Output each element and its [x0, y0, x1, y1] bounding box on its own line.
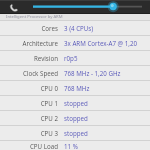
- button[interactable]: CPU Load: [0, 140, 150, 150]
- staticText: CPU Load: [29, 142, 58, 150]
- staticText: 768 MHz: [64, 84, 90, 92]
- staticText: Clock Speed: [22, 69, 58, 77]
- button[interactable]: CPU 0: [0, 80, 150, 95]
- staticText: 3x ARM Cortex-A7 @ 1,20 GHz: [64, 39, 150, 47]
- staticText: stopped: [64, 129, 88, 137]
- staticText: Architecture: [22, 39, 58, 47]
- staticText: Intelligent Processor by ARM: [6, 14, 63, 20]
- button[interactable]: CPU 2: [0, 110, 150, 125]
- staticText: stopped: [64, 114, 88, 122]
- staticText: r0p5: [64, 54, 78, 62]
- staticText: 768 MHz - 1,20 GHz: [64, 69, 121, 77]
- staticText: 3 (4 CPUs): [64, 24, 94, 32]
- button[interactable]: Volume slider: [30, 0, 148, 14]
- staticText: CPU 3: [40, 129, 58, 137]
- button[interactable]: CPU 1: [0, 95, 150, 110]
- button[interactable]: Architecture: [0, 35, 150, 50]
- staticText: CPU 0: [40, 84, 58, 92]
- staticText: Cores: [41, 24, 58, 32]
- button[interactable]: Call volume: [7, 1, 20, 14]
- button[interactable]: Revision: [0, 50, 150, 65]
- staticText: stopped: [64, 99, 88, 107]
- button[interactable]: CPU 3: [0, 125, 150, 140]
- staticText: CPU 2: [40, 114, 58, 122]
- button[interactable]: Cores: [0, 21, 150, 35]
- staticText: CPU 1: [40, 99, 58, 107]
- button[interactable]: Clock Speed: [0, 65, 150, 80]
- staticText: Revision: [33, 54, 58, 62]
- staticText: 11 %: [64, 142, 78, 150]
